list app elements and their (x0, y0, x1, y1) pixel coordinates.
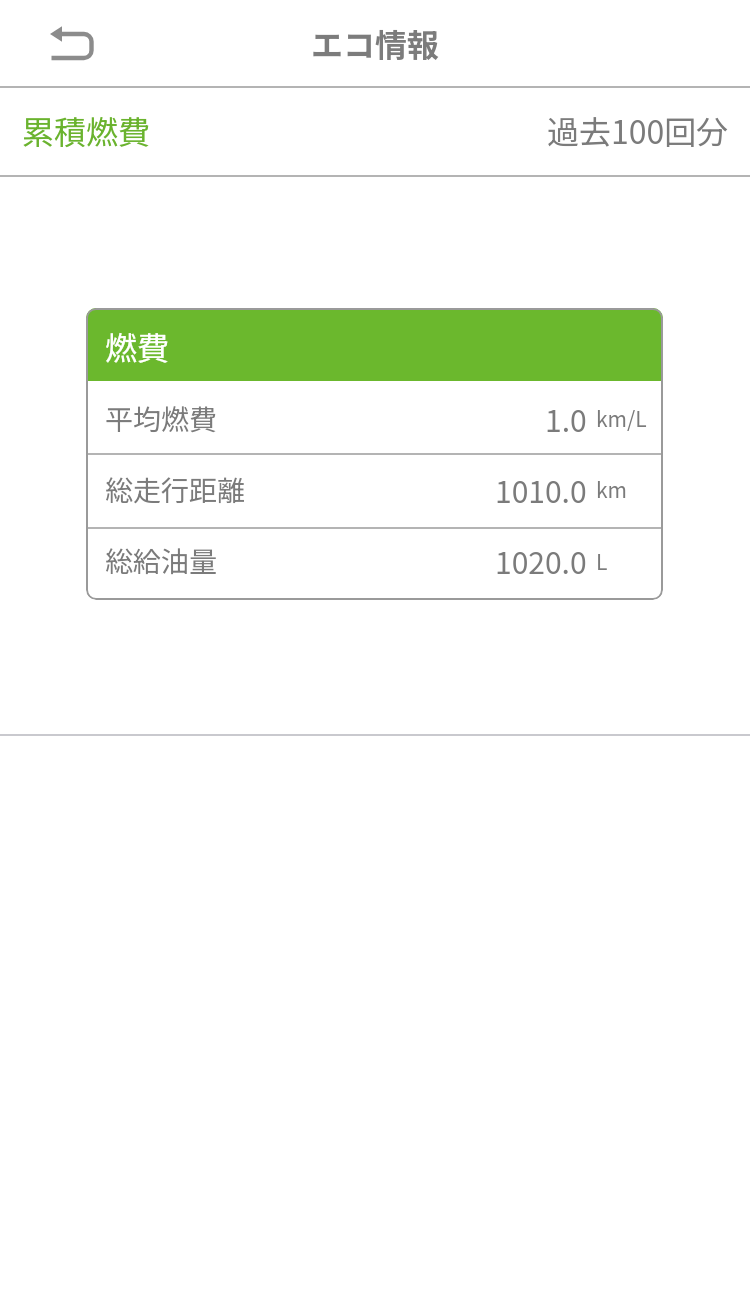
button[interactable]: Back (39, 10, 105, 76)
staticText: 平均燃費 (105, 398, 218, 439)
button[interactable]: 総走行距離 (86, 455, 663, 527)
staticText: 燃費 (105, 323, 170, 369)
staticText: 総給油量 (105, 540, 218, 581)
staticText: 1.0 (545, 397, 587, 440)
staticText: 累積燃費 (22, 107, 151, 153)
staticText: km (596, 474, 628, 504)
button[interactable]: 平均燃費 (86, 381, 663, 453)
button[interactable]: 累積燃費 (0, 88, 173, 175)
staticText: エコ情報 (311, 20, 440, 66)
staticText: 総走行距離 (105, 469, 246, 510)
staticText: 過去100回分 (547, 107, 729, 153)
staticText: 1010.0 (495, 468, 587, 511)
staticText: 1020.0 (495, 539, 587, 582)
button[interactable]: 総給油量 (86, 529, 663, 600)
staticText: km/L (596, 403, 647, 433)
staticText: L (596, 546, 608, 576)
button[interactable]: 過去100回分 (526, 88, 750, 175)
